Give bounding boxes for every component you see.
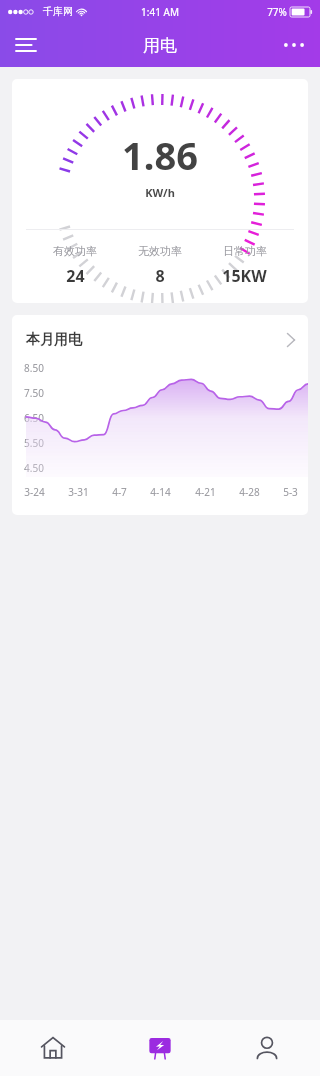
staticText: 4-21 (195, 485, 216, 499)
button[interactable]: Electricity (106, 1020, 213, 1076)
staticText: 8.50 (24, 361, 44, 375)
staticText: 77% (267, 5, 287, 19)
button[interactable]: 1.86 (12, 79, 308, 303)
button[interactable]: More options (274, 25, 314, 65)
staticText: 用电 (143, 35, 177, 56)
staticText: 4.50 (24, 461, 44, 475)
staticText: 7.50 (24, 386, 44, 400)
button[interactable]: Profile (213, 1020, 320, 1076)
button[interactable]: 无效功率 (138, 244, 182, 287)
button[interactable]: 本月用电 (26, 331, 296, 349)
button[interactable]: Menu (6, 25, 46, 65)
staticText: 3-31 (68, 485, 89, 499)
staticText: 1.86 (122, 129, 198, 181)
staticText: 3-24 (24, 485, 45, 499)
staticText: 6.50 (24, 411, 44, 425)
staticText: 1:41 AM (141, 5, 179, 19)
button[interactable]: 日常功率 (222, 244, 267, 287)
button[interactable]: Home (0, 1020, 106, 1076)
staticText: 有效功率 (53, 244, 97, 258)
staticText: 5-3 (283, 485, 298, 499)
staticText: 无效功率 (138, 244, 182, 258)
staticText: 4-7 (112, 485, 127, 499)
staticText: 4-14 (150, 485, 171, 499)
staticText: 8 (155, 265, 165, 287)
staticText: 5.50 (24, 436, 44, 450)
staticText: 15KW (222, 265, 267, 287)
staticText: 日常功率 (223, 244, 267, 258)
staticText: 4-28 (239, 485, 260, 499)
staticText: 千库网 (43, 5, 73, 18)
staticText: 24 (66, 265, 85, 287)
button[interactable]: 有效功率 (53, 244, 97, 287)
staticText: 本月用电 (26, 331, 82, 349)
staticText: KW/h (145, 185, 175, 200)
